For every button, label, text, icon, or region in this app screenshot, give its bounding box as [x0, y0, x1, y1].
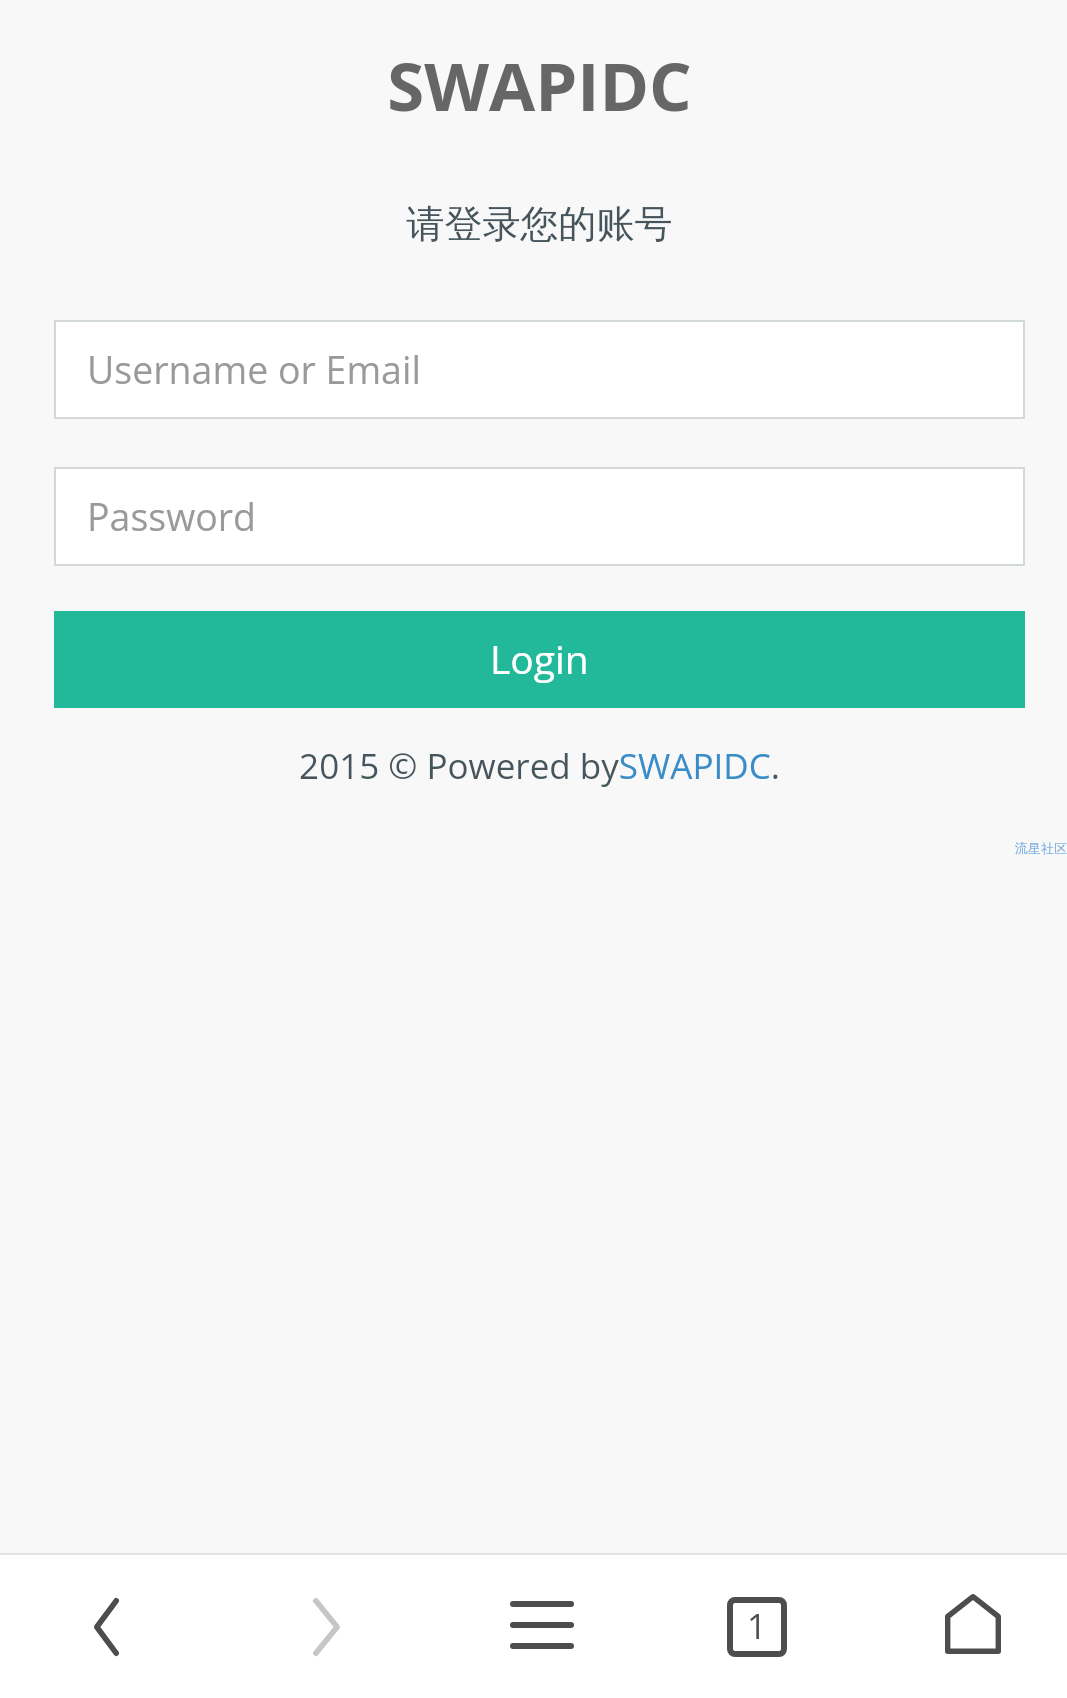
staticText: 请登录您的账号 — [54, 200, 1025, 248]
button[interactable]: Password — [54, 467, 1025, 566]
button[interactable]: 流星社区 — [1015, 840, 1067, 856]
button[interactable]: Tabs — [649, 1555, 866, 1698]
staticText: Password — [87, 491, 257, 542]
button[interactable]: Menu — [432, 1555, 649, 1698]
button[interactable]: Home — [866, 1555, 1065, 1698]
staticText: Login — [490, 632, 589, 685]
button[interactable]: Login — [54, 611, 1025, 708]
button[interactable]: Forward — [215, 1555, 432, 1698]
staticText: Username or Email — [87, 344, 421, 395]
button[interactable]: Username or Email — [54, 320, 1025, 419]
staticText: 2015 © Powered bySWAPIDC. — [54, 742, 1025, 790]
staticText: SWAPIDC — [54, 39, 1025, 130]
button[interactable]: Back — [0, 1555, 215, 1698]
staticText: 1 — [747, 1603, 767, 1649]
